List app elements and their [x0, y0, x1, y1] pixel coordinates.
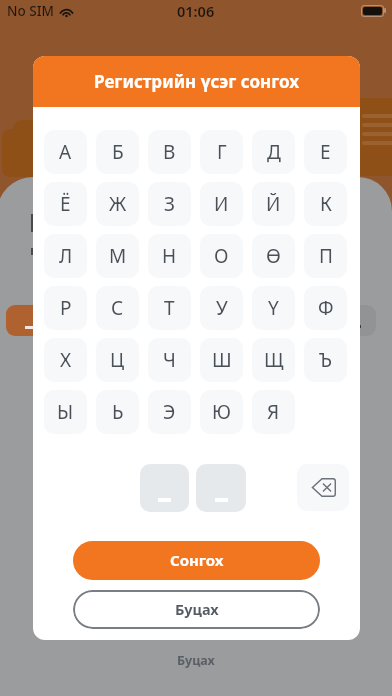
staticText: Ь [112, 399, 124, 425]
staticText: К [320, 191, 332, 217]
staticText: Н [162, 243, 177, 269]
staticText: С [111, 295, 124, 321]
staticText: Ы [57, 399, 74, 425]
staticText: Д [267, 139, 281, 165]
staticText: А [59, 139, 72, 165]
button[interactable]: Й [252, 182, 295, 226]
button[interactable]: И [200, 182, 243, 226]
button[interactable]: Backspace [297, 464, 349, 511]
button[interactable]: Буцах [0, 647, 392, 673]
button[interactable]: Space [140, 464, 189, 512]
button[interactable]: Ч [148, 338, 191, 382]
button[interactable]: Буцах [73, 590, 320, 629]
button[interactable]: А [44, 130, 87, 174]
staticText: Регистрийн үсэг сонгох [94, 70, 300, 93]
staticText: Ъ [319, 347, 333, 373]
staticText: Я [267, 399, 280, 425]
staticText: П [319, 243, 333, 269]
button[interactable]: Э [148, 390, 191, 434]
staticText: Ө [266, 243, 281, 269]
button[interactable]: Д [252, 130, 295, 174]
staticText: З [164, 191, 175, 217]
staticText: У [216, 295, 228, 321]
staticText: Т [164, 295, 175, 321]
button[interactable]: Ш [200, 338, 243, 382]
staticText: Сонгох [170, 550, 224, 570]
button[interactable]: П [304, 234, 347, 278]
button[interactable]: Т [148, 286, 191, 330]
button[interactable]: У [200, 286, 243, 330]
button[interactable]: Сонгох [73, 541, 320, 580]
staticText: No SIM [7, 2, 54, 20]
staticText: Ү [268, 295, 279, 321]
button[interactable]: С [96, 286, 139, 330]
button[interactable]: З [148, 182, 191, 226]
button[interactable]: Ы [44, 390, 87, 434]
staticText: Ц [110, 347, 125, 373]
staticText: Ю [212, 399, 231, 425]
button[interactable]: Ц [96, 338, 139, 382]
staticText: Ж [109, 191, 127, 217]
staticText: Щ [264, 347, 284, 373]
button[interactable]: Я [252, 390, 295, 434]
staticText: Л [59, 243, 73, 269]
button[interactable]: Е [304, 130, 347, 174]
button[interactable]: Ө [252, 234, 295, 278]
button[interactable]: Г [200, 130, 243, 174]
button[interactable]: Щ [252, 338, 295, 382]
staticText: Х [60, 347, 72, 373]
button[interactable]: Ё [44, 182, 87, 226]
button[interactable]: Ү [252, 286, 295, 330]
button[interactable]: Б [96, 130, 139, 174]
button[interactable]: Н [148, 234, 191, 278]
staticText: В [163, 139, 176, 165]
staticText: Буцах [177, 652, 215, 669]
staticText: Ч [163, 347, 176, 373]
staticText: Р [60, 295, 72, 321]
button[interactable]: Space [196, 464, 246, 512]
staticText: О [214, 243, 229, 269]
staticText: 01:06 [177, 1, 215, 21]
staticText: Е [320, 139, 331, 165]
button[interactable]: Ю [200, 390, 243, 434]
staticText: Г [217, 139, 227, 165]
button[interactable]: Ф [304, 286, 347, 330]
staticText: Б [112, 139, 124, 165]
button[interactable]: Ж [96, 182, 139, 226]
staticText: Ш [212, 347, 232, 373]
button[interactable]: Ъ [304, 338, 347, 382]
button[interactable]: М [96, 234, 139, 278]
button[interactable]: К [304, 182, 347, 226]
button[interactable]: О [200, 234, 243, 278]
staticText: Ё [60, 191, 71, 217]
button[interactable]: Х [44, 338, 87, 382]
button[interactable]: Ь [96, 390, 139, 434]
button[interactable]: Л [44, 234, 87, 278]
staticText: Э [163, 399, 176, 425]
button[interactable]: В [148, 130, 191, 174]
staticText: Й [266, 191, 281, 217]
staticText: И [214, 191, 229, 217]
staticText: Буцах [175, 599, 219, 619]
button[interactable]: Р [44, 286, 87, 330]
staticText: Ф [318, 295, 334, 321]
staticText: М [109, 243, 127, 269]
